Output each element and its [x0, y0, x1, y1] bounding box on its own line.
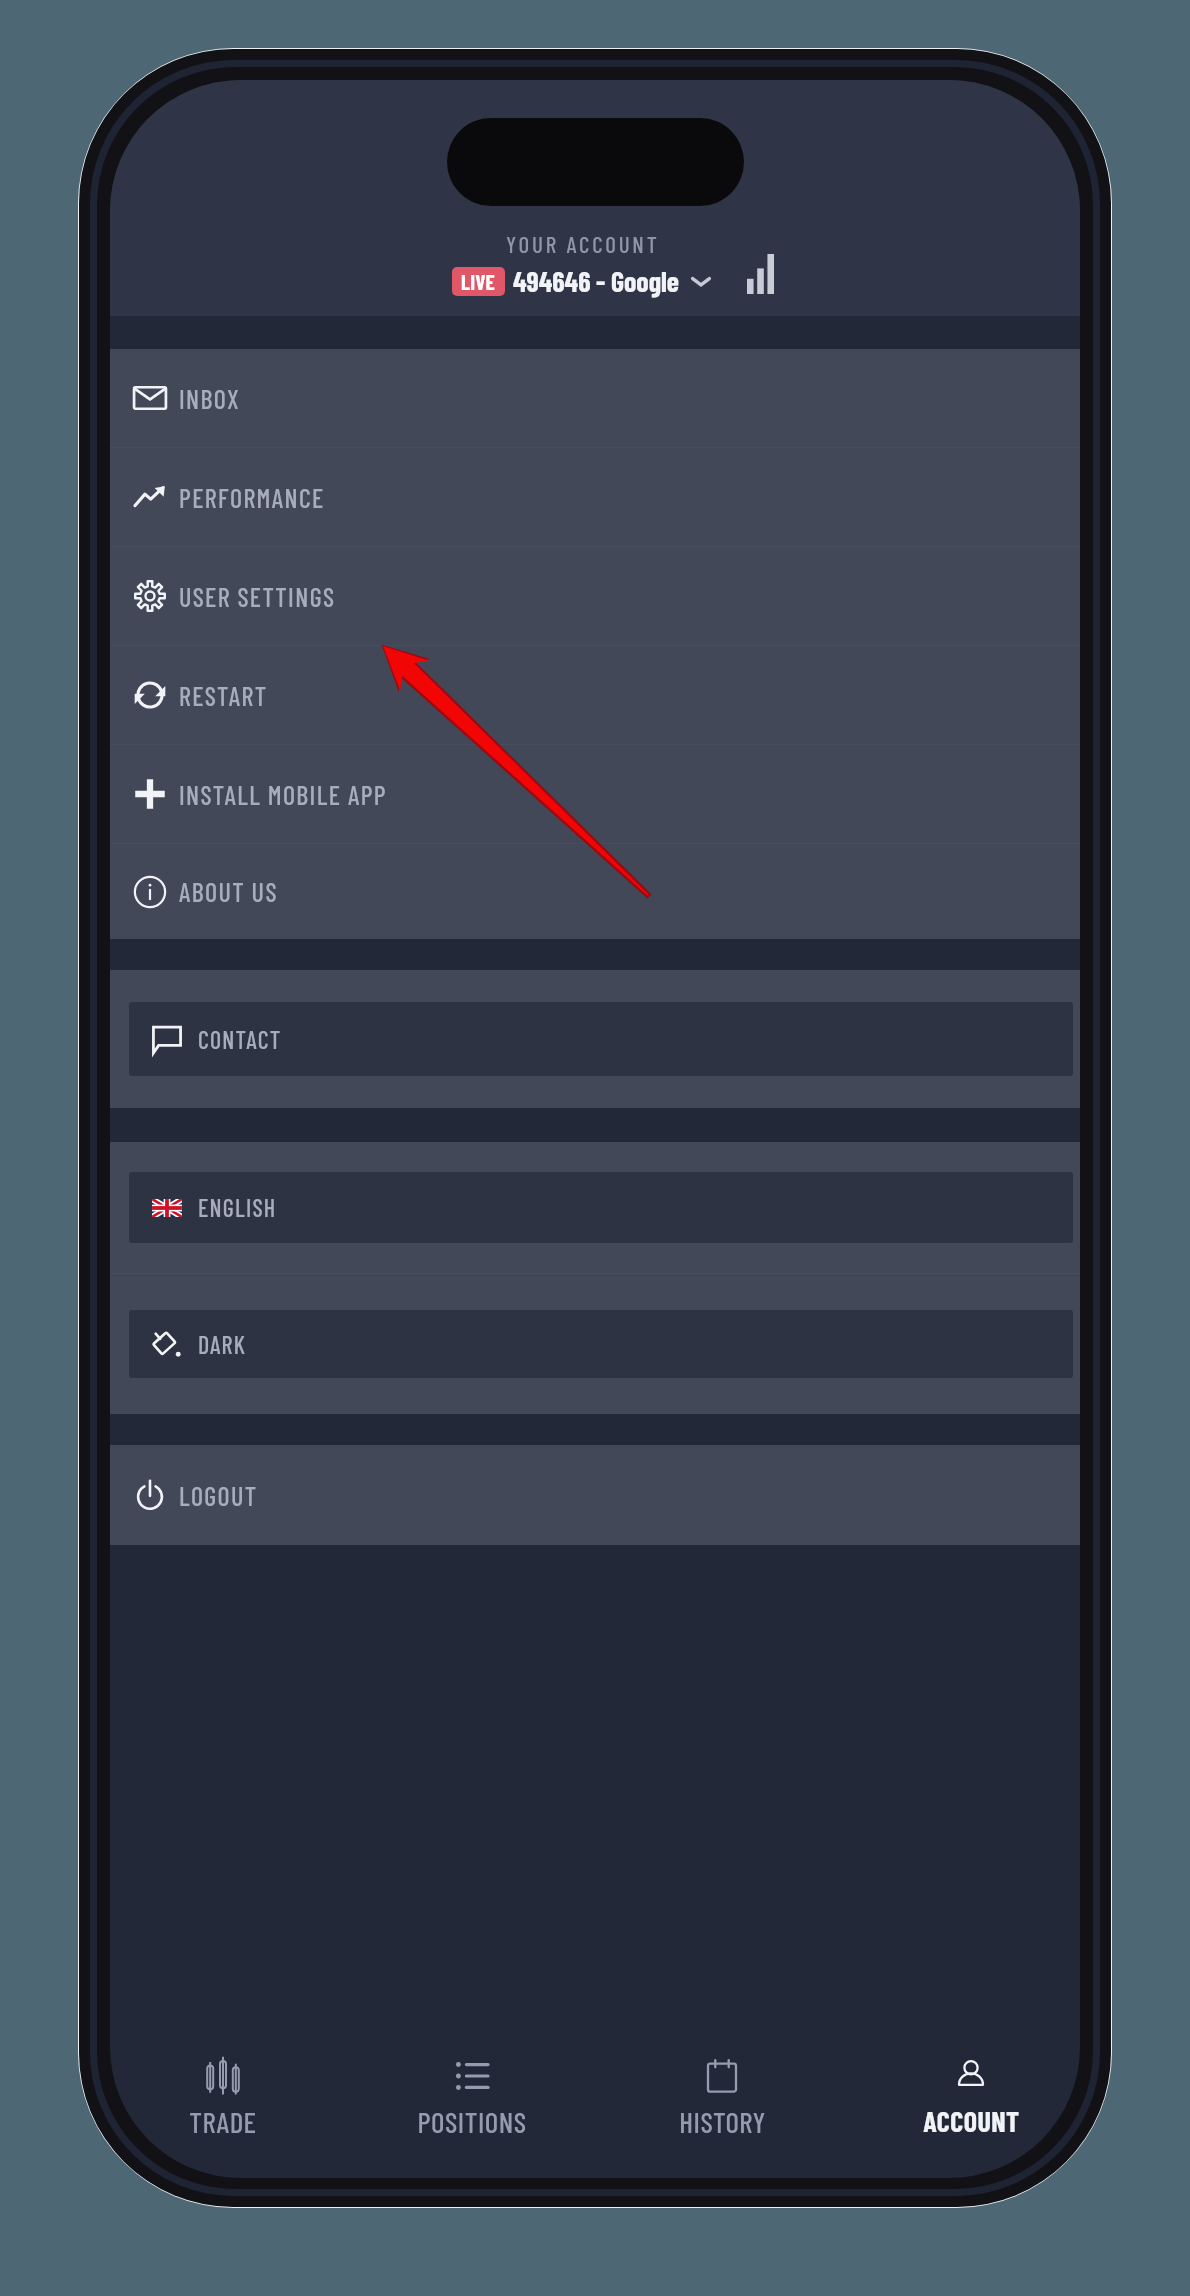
button[interactable]: CONTACT	[129, 1002, 1073, 1076]
button[interactable]: LIVE	[452, 264, 712, 298]
button[interactable]: LOGOUT	[110, 1445, 1080, 1545]
staticText: POSITIONS	[417, 2104, 527, 2139]
staticText: USER SETTINGS	[179, 581, 336, 612]
button[interactable]: PERFORMANCE	[110, 448, 1080, 546]
staticText: RESTART	[179, 680, 268, 711]
button[interactable]: ABOUT US	[110, 844, 1080, 939]
staticText: TRADE	[189, 2104, 257, 2139]
staticText: ACCOUNT	[923, 2104, 1020, 2138]
button[interactable]: HISTORY	[607, 2042, 837, 2178]
staticText: INSTALL MOBILE APP	[179, 779, 387, 810]
staticText: ABOUT US	[179, 876, 278, 907]
button[interactable]: ACCOUNT	[856, 2042, 1080, 2178]
staticText: CONTACT	[198, 1025, 282, 1054]
staticText: 494646 - Google	[513, 264, 680, 298]
button[interactable]: INSTALL MOBILE APP	[110, 745, 1080, 843]
button[interactable]: Account statistics	[733, 246, 789, 302]
button[interactable]: USER SETTINGS	[110, 547, 1080, 645]
staticText: HISTORY	[679, 2104, 766, 2139]
staticText: LIVE	[461, 269, 496, 294]
button[interactable]: INBOX	[110, 349, 1080, 447]
staticText: LOGOUT	[179, 1480, 258, 1511]
button[interactable]: RESTART	[110, 646, 1080, 744]
staticText: DARK	[198, 1330, 247, 1359]
staticText: ENGLISH	[198, 1193, 277, 1222]
button[interactable]: POSITIONS	[357, 2042, 587, 2178]
button[interactable]: TRADE	[110, 2042, 338, 2178]
staticText: PERFORMANCE	[179, 482, 325, 513]
button[interactable]: ENGLISH	[129, 1172, 1073, 1243]
staticText: YOUR ACCOUNT	[506, 230, 660, 258]
button[interactable]: DARK	[129, 1310, 1073, 1378]
staticText: INBOX	[179, 383, 241, 414]
